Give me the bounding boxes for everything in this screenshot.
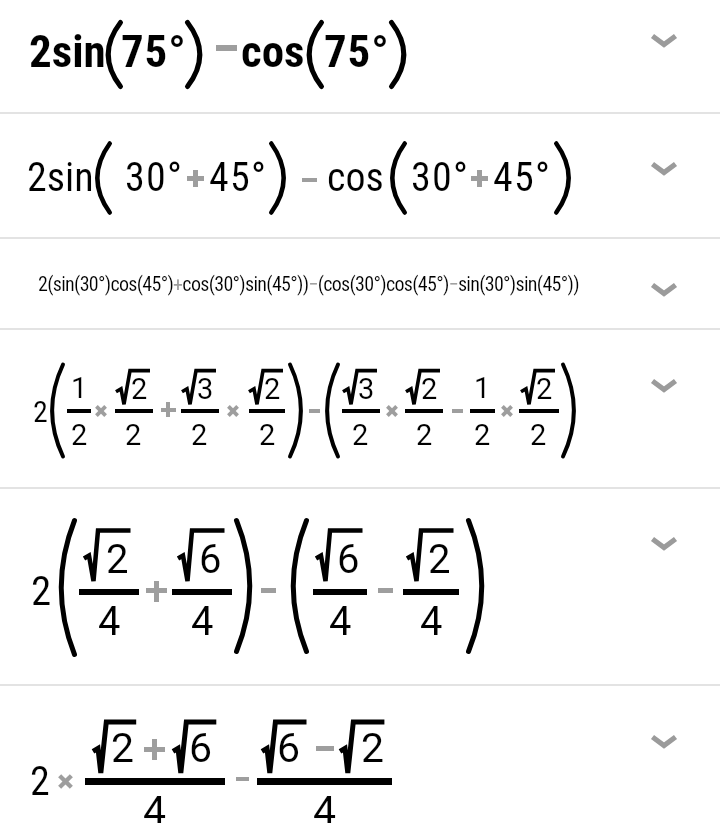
staticText: 75° xyxy=(121,25,187,78)
staticText: 2 xyxy=(416,418,433,452)
staticText: 2sin xyxy=(29,25,106,78)
staticText: 2 xyxy=(530,418,547,452)
staticText: 2 xyxy=(31,567,52,615)
staticText: 4 xyxy=(191,598,214,645)
staticText: 2 xyxy=(536,372,553,406)
staticText: 2 xyxy=(106,536,129,583)
staticText: 2(sin(30°)cos(45°)+cos(30°)sin(45°))−(co… xyxy=(38,272,579,295)
button[interactable] xyxy=(0,330,720,487)
button[interactable] xyxy=(0,489,720,685)
button[interactable] xyxy=(0,0,720,112)
staticText: 45° xyxy=(493,154,552,201)
staticText: 2 xyxy=(264,372,281,406)
staticText: 2 xyxy=(191,418,208,452)
staticText: 1 xyxy=(71,371,88,405)
staticText: cos xyxy=(327,154,384,201)
button[interactable] xyxy=(0,114,720,237)
staticText: 4 xyxy=(420,598,443,645)
staticText: 6 xyxy=(189,724,213,772)
staticText: 75° xyxy=(324,25,390,78)
staticText: 2 xyxy=(131,372,148,406)
button[interactable] xyxy=(0,686,720,823)
staticText: 2 xyxy=(125,418,142,452)
staticText: 30° xyxy=(125,154,184,201)
staticText: 45° xyxy=(209,154,268,201)
staticText: 2sin xyxy=(27,154,94,201)
staticText: 6 xyxy=(337,536,360,583)
staticText: 30° xyxy=(411,154,470,201)
staticText: 2 xyxy=(71,418,88,452)
staticText: 2 xyxy=(352,418,369,452)
staticText: 4 xyxy=(313,787,337,823)
staticText: 2 xyxy=(361,724,385,772)
staticText: 4 xyxy=(143,787,167,823)
staticText: 4 xyxy=(98,598,121,645)
staticText: 4 xyxy=(329,598,352,645)
staticText: 2 xyxy=(30,758,50,805)
staticText: 2 xyxy=(111,724,135,772)
staticText: 3 xyxy=(358,372,375,406)
staticText: 6 xyxy=(277,724,301,772)
button[interactable] xyxy=(0,238,720,328)
staticText: 2 xyxy=(259,418,276,452)
staticText: 2 xyxy=(33,394,48,429)
staticText: 6 xyxy=(199,536,222,583)
staticText: cos xyxy=(241,25,305,78)
staticText: 1 xyxy=(474,371,491,405)
staticText: 2 xyxy=(428,536,451,583)
staticText: 2 xyxy=(421,372,438,406)
staticText: 3 xyxy=(197,372,214,406)
staticText: 2 xyxy=(474,418,491,452)
